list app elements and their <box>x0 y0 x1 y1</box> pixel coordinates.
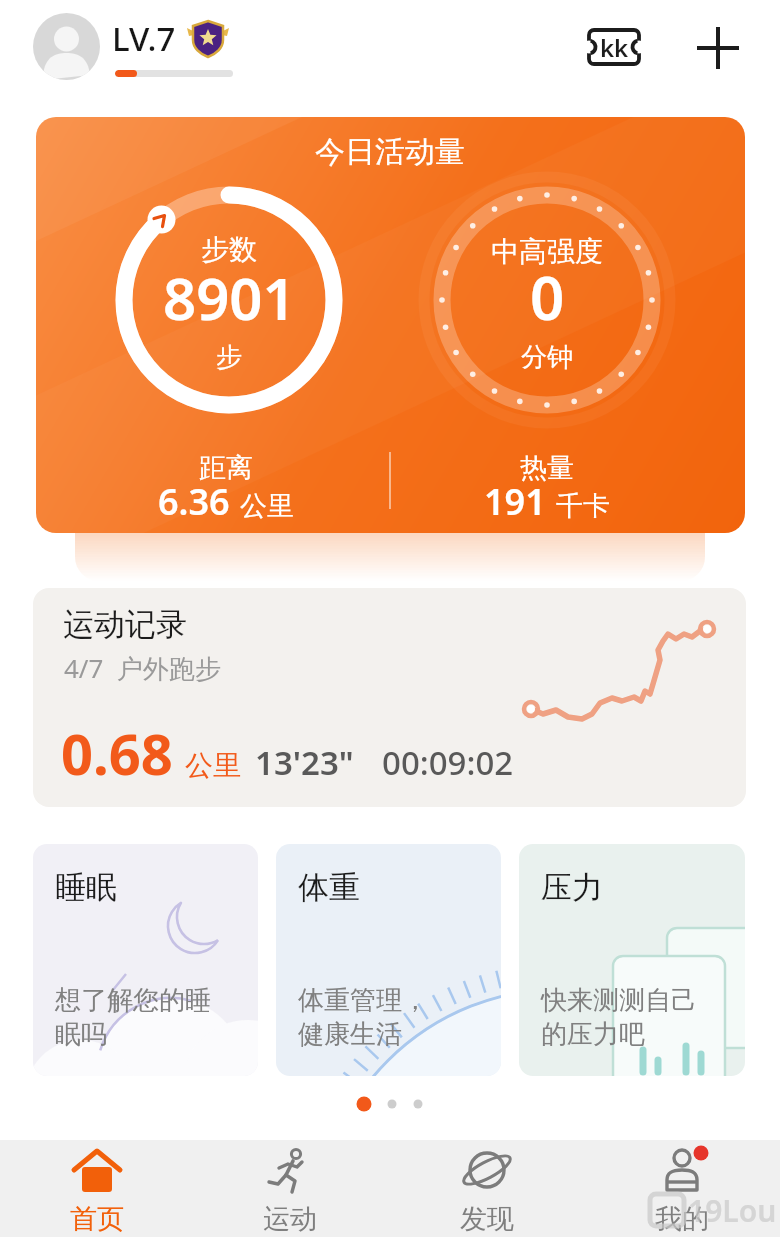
staticText: 8901 <box>163 258 296 337</box>
button[interactable]: 发现 <box>427 1140 547 1237</box>
button[interactable]: LV.7 <box>112 16 242 60</box>
staticText: 步 <box>216 341 242 374</box>
button[interactable]: 我的 <box>622 1140 742 1237</box>
button[interactable]: kk <box>585 24 643 70</box>
staticText: 首页 <box>70 1202 124 1236</box>
staticText: 千卡 <box>556 489 610 523</box>
staticText: 距离 <box>199 451 253 485</box>
staticText: 体重 <box>298 868 360 907</box>
staticText: 运动 <box>263 1202 317 1236</box>
staticText: 公里 <box>240 489 294 523</box>
staticText: LV.7 <box>112 16 176 60</box>
staticText: 中高强度 <box>491 234 603 269</box>
staticText: 发现 <box>460 1202 514 1236</box>
button[interactable]: 首页 <box>37 1140 157 1237</box>
staticText: 我的 <box>655 1202 709 1236</box>
staticText: 今日活动量 <box>315 133 465 171</box>
staticText: 睡眠 <box>55 868 117 907</box>
staticText: 13'23" <box>255 740 354 785</box>
staticText: 191 <box>484 477 546 519</box>
button[interactable]: 体重 <box>276 844 501 1076</box>
staticText: 热量 <box>520 451 574 485</box>
staticText: 想了解您的睡 眠吗 <box>55 984 211 1051</box>
staticText: 步数 <box>201 232 257 267</box>
button[interactable] <box>36 117 745 533</box>
staticText: kk <box>600 31 629 64</box>
button[interactable]: 运动记录 <box>33 588 746 807</box>
staticText: 分钟 <box>521 341 573 374</box>
button[interactable]: 睡眠 <box>33 844 258 1076</box>
staticText: 快来测测自己 的压力吧 <box>541 984 697 1051</box>
staticText: 19Lou <box>688 1190 777 1231</box>
staticText: 体重管理， 健康生活 <box>298 984 428 1051</box>
staticText: 压力 <box>541 868 603 907</box>
staticText: 00:09:02 <box>382 740 514 785</box>
staticText: 公里 <box>185 748 241 783</box>
staticText: 4/7 户外跑步 <box>64 650 221 686</box>
staticText: 6.36 <box>158 477 230 519</box>
staticText: 0.68 <box>61 715 173 791</box>
staticText: 0 <box>530 256 565 338</box>
button[interactable] <box>33 13 100 80</box>
button[interactable]: 运动 <box>230 1140 350 1237</box>
staticText: 运动记录 <box>63 605 187 644</box>
button[interactable] <box>692 22 744 74</box>
button[interactable]: 压力 <box>519 844 745 1076</box>
